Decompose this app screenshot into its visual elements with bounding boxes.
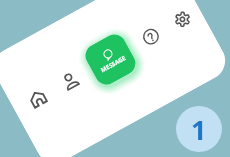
button[interactable]: 1	[176, 106, 222, 152]
staticText: 1	[191, 111, 207, 148]
button[interactable]: Help	[135, 20, 167, 53]
button[interactable]: MESSAGE	[81, 30, 140, 89]
button[interactable]: Home	[22, 82, 54, 115]
button[interactable]: Settings	[166, 3, 199, 36]
staticText: MESSAGE	[99, 54, 128, 74]
button[interactable]: Profile	[54, 65, 87, 97]
